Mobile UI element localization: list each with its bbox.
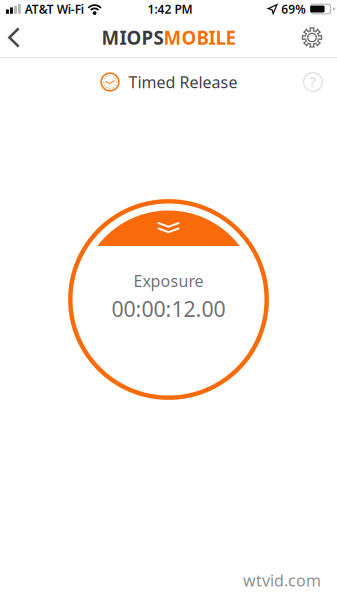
- button[interactable]: Timed Release: [91, 58, 245, 106]
- staticText: MOBILE: [163, 25, 235, 50]
- staticText: MIOPS: [101, 25, 163, 50]
- staticText: 00:00:12.00: [111, 294, 225, 323]
- button[interactable]: Settings: [290, 18, 334, 57]
- staticText: 69%: [281, 1, 306, 17]
- staticText: Exposure: [133, 270, 203, 291]
- button[interactable]: Back: [0, 18, 28, 57]
- staticText: 1:42 PM: [147, 1, 192, 17]
- staticText: ?: [309, 72, 316, 91]
- staticText: Timed Release: [128, 71, 237, 93]
- button[interactable]: Help: [291, 58, 335, 106]
- staticText: wtvid.com: [243, 570, 321, 591]
- staticText: AT&T Wi-Fi: [25, 1, 84, 17]
